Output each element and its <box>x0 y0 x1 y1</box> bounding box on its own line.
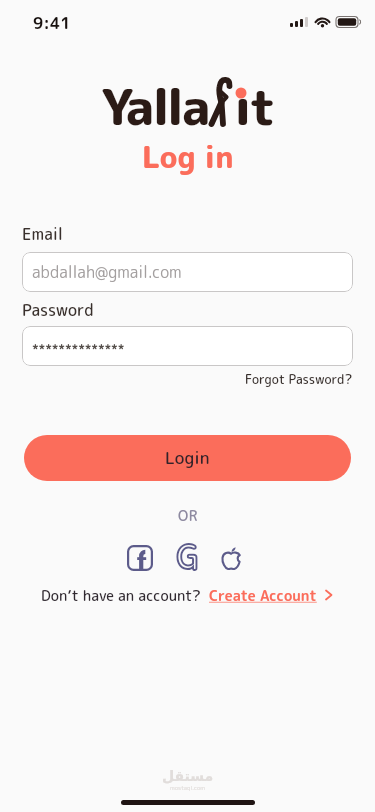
staticText: OR <box>178 506 198 526</box>
staticText: abdallah@gmail.com <box>32 261 182 283</box>
staticText: Log in <box>142 136 234 178</box>
staticText: ıt <box>234 71 274 129</box>
button[interactable] <box>127 545 153 571</box>
button[interactable] <box>218 545 244 571</box>
staticText: Email <box>22 223 63 245</box>
staticText: Forgot Password? <box>245 371 353 388</box>
staticText: ************** <box>32 340 125 358</box>
button[interactable]: ************** <box>22 326 353 366</box>
button[interactable]: Login <box>24 435 351 481</box>
staticText: mostaql.com <box>170 784 206 792</box>
button[interactable]: Create Account <box>209 585 335 605</box>
button[interactable]: G <box>173 544 200 571</box>
staticText: G <box>176 536 199 580</box>
staticText: Don’t have an account? <box>41 585 201 605</box>
staticText: Create Account <box>209 585 317 605</box>
staticText: Password <box>22 299 94 321</box>
staticText: Yalla <box>101 71 209 129</box>
staticText: مستقل <box>162 768 214 784</box>
button[interactable]: Forgot Password? <box>245 371 353 388</box>
button[interactable]: abdallah@gmail.com <box>22 252 353 292</box>
staticText: Login <box>165 446 210 470</box>
staticText: 9:41 <box>33 12 71 34</box>
